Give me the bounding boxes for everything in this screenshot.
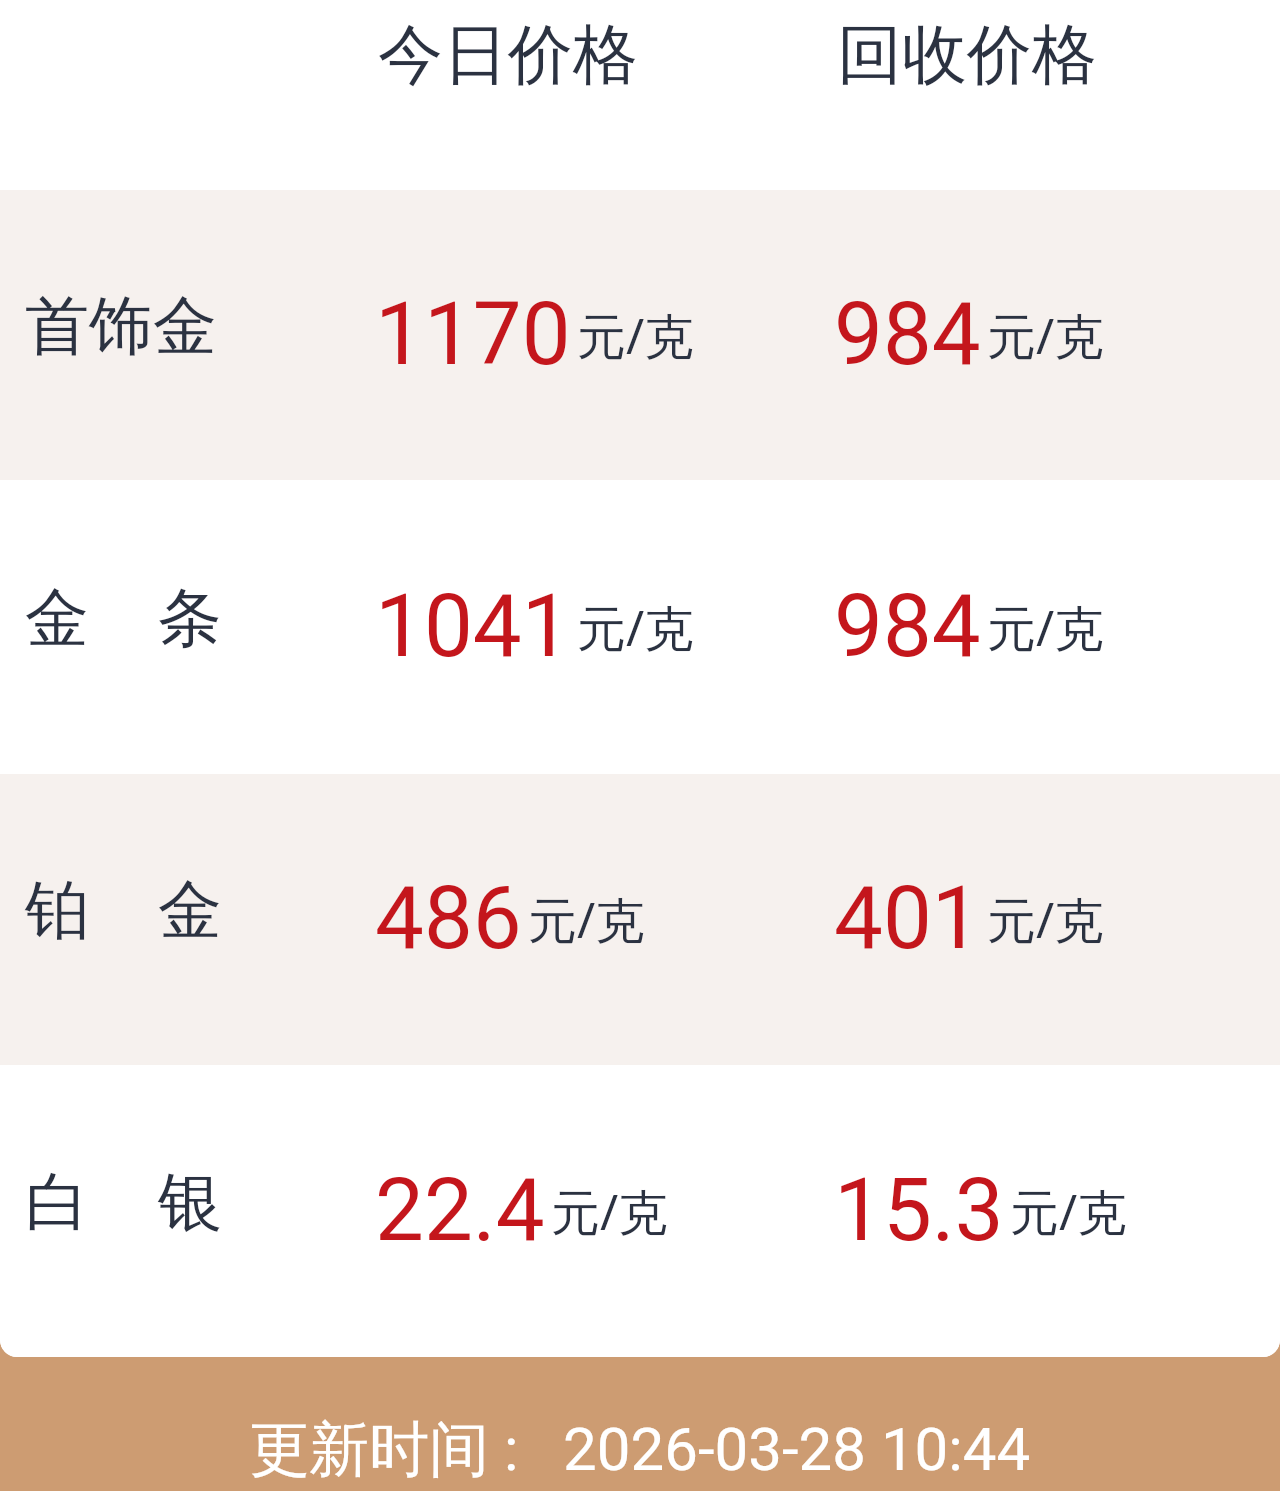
staticText: 今日价格 (378, 14, 638, 96)
staticText: 元/克 (551, 1178, 668, 1245)
button[interactable]: 金 (0, 480, 1280, 774)
staticText: 元/克 (577, 594, 694, 661)
staticText: 984 (834, 283, 981, 385)
staticText: 元/克 (987, 302, 1104, 369)
button[interactable]: 白 (0, 1065, 1280, 1357)
staticText: 元/克 (987, 886, 1104, 953)
staticText: 金 (25, 578, 89, 659)
button[interactable]: 今日价格 (378, 14, 837, 96)
staticText: 22.4 (375, 1159, 545, 1261)
staticText: 401 (834, 867, 981, 969)
staticText: 首饰金 (25, 286, 217, 367)
staticText: 元/克 (577, 302, 694, 369)
button[interactable]: 铂 (0, 774, 1280, 1065)
staticText: 铂 (25, 870, 89, 951)
staticText: 回收价格 (837, 14, 1097, 96)
staticText: 15.3 (834, 1159, 1004, 1261)
staticText: 银 (158, 1162, 222, 1243)
staticText: 白 (25, 1162, 89, 1243)
staticText: 元/克 (528, 886, 645, 953)
staticText: 1170 (375, 283, 571, 385)
button[interactable]: 首饰金 (0, 190, 1280, 480)
staticText: 条 (158, 578, 222, 659)
staticText: 元/克 (1010, 1178, 1127, 1245)
button[interactable]: 回收价格 (837, 14, 1280, 96)
staticText: 金 (158, 870, 222, 951)
staticText: 元/克 (987, 594, 1104, 661)
staticText: 更新时间 : 2026-03-28 10:44 (249, 1412, 1031, 1488)
button[interactable]: Last updated (0, 1357, 1280, 1491)
staticText: 486 (375, 867, 522, 969)
staticText: 984 (834, 575, 981, 677)
staticText: 1041 (375, 575, 571, 677)
